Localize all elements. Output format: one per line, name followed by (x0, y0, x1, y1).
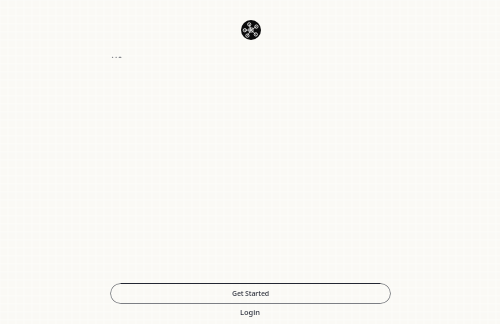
other: App logo (241, 20, 261, 40)
button[interactable]: Get Started (110, 283, 391, 304)
staticText: Login (240, 307, 260, 317)
staticText: Get Started (232, 289, 270, 299)
button[interactable]: Login (230, 304, 270, 320)
